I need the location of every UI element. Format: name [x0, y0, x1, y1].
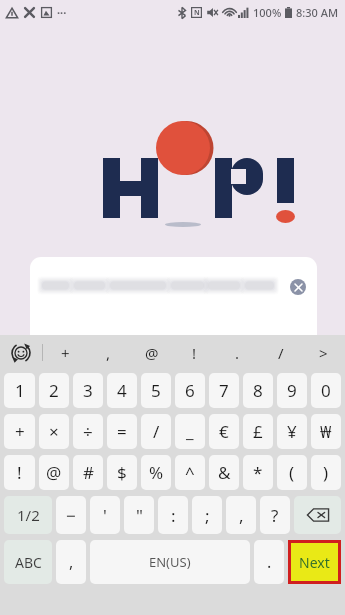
button[interactable]: ,: [56, 540, 86, 584]
button[interactable]: EN(US): [90, 540, 250, 584]
button[interactable]: @: [39, 455, 69, 490]
button[interactable]: _: [175, 414, 205, 449]
staticText: 0: [321, 379, 331, 402]
staticText: 7: [219, 379, 229, 402]
button[interactable]: &: [209, 455, 239, 490]
staticText: &: [218, 461, 231, 484]
button[interactable]: 1/2: [4, 496, 52, 534]
staticText: .: [267, 551, 272, 573]
button[interactable]: 6: [175, 373, 205, 408]
staticText: ÷: [83, 420, 93, 443]
button[interactable]: ÷: [73, 414, 103, 449]
staticText: ): [323, 461, 329, 484]
button[interactable]: #: [73, 455, 103, 490]
staticText: ": [136, 504, 143, 527]
staticText: ,: [69, 551, 74, 573]
button[interactable]: £: [243, 414, 273, 449]
staticText: @: [46, 461, 62, 484]
staticText: 3: [83, 379, 93, 402]
button[interactable]: %: [141, 455, 171, 490]
staticText: EN(US): [149, 553, 191, 571]
button[interactable]: !: [173, 335, 216, 370]
staticText: .: [235, 343, 240, 363]
button[interactable]: 4: [107, 373, 137, 408]
staticText: 100%: [253, 5, 282, 20]
button[interactable]: 1: [4, 373, 35, 408]
button[interactable]: =: [107, 414, 137, 449]
staticText: ;: [205, 504, 210, 527]
staticText: ?: [271, 504, 279, 527]
staticText: ···: [57, 5, 67, 20]
staticText: #: [83, 461, 94, 484]
button[interactable]: .: [254, 540, 284, 584]
button[interactable]: Clear text: [30, 257, 317, 337]
staticText: _: [186, 420, 194, 443]
staticText: $: [117, 461, 127, 484]
button[interactable]: ¥: [277, 414, 307, 449]
button[interactable]: 2: [39, 373, 69, 408]
button[interactable]: ?: [260, 496, 290, 534]
staticText: 4: [117, 379, 127, 402]
staticText: ': [103, 504, 107, 527]
staticText: :: [171, 504, 176, 527]
button[interactable]: 7: [209, 373, 239, 408]
button[interactable]: @: [130, 335, 173, 370]
staticText: −: [66, 504, 76, 527]
button[interactable]: $: [107, 455, 137, 490]
button[interactable]: /: [259, 335, 302, 370]
button[interactable]: ^: [175, 455, 205, 490]
button[interactable]: 5: [141, 373, 171, 408]
button[interactable]: +: [43, 335, 87, 370]
staticText: /: [278, 343, 284, 363]
button[interactable]: ;: [192, 496, 222, 534]
staticText: @: [145, 343, 159, 363]
staticText: 8:30 AM: [296, 5, 339, 20]
staticText: 6: [185, 379, 195, 402]
button[interactable]: :: [158, 496, 188, 534]
staticText: ₩: [320, 420, 332, 443]
staticText: +: [15, 420, 25, 443]
staticText: =: [117, 420, 127, 443]
staticText: €: [219, 420, 229, 443]
button[interactable]: ": [124, 496, 154, 534]
button[interactable]: (: [277, 455, 307, 490]
staticText: ×: [49, 420, 59, 443]
staticText: !: [17, 461, 22, 484]
staticText: /: [153, 420, 160, 443]
staticText: N: [194, 8, 200, 18]
button[interactable]: Next: [291, 543, 338, 581]
button[interactable]: ₩: [311, 414, 341, 449]
button[interactable]: Backspace: [294, 496, 341, 534]
staticText: 5: [151, 379, 161, 402]
button[interactable]: /: [141, 414, 171, 449]
button[interactable]: Emoji: [0, 335, 42, 370]
staticText: £: [253, 420, 263, 443]
button[interactable]: ABC: [4, 540, 52, 584]
staticText: *: [253, 461, 263, 484]
button[interactable]: 9: [277, 373, 307, 408]
button[interactable]: ×: [39, 414, 69, 449]
button[interactable]: 0: [311, 373, 341, 408]
staticText: %: [149, 461, 164, 484]
button[interactable]: ,: [87, 335, 130, 370]
button[interactable]: ): [311, 455, 341, 490]
button[interactable]: ': [90, 496, 120, 534]
button[interactable]: +: [4, 414, 35, 449]
button[interactable]: *: [243, 455, 273, 490]
staticText: +: [61, 343, 70, 363]
button[interactable]: ,: [226, 496, 256, 534]
button[interactable]: >: [302, 335, 345, 370]
button[interactable]: .: [216, 335, 259, 370]
button[interactable]: 3: [73, 373, 103, 408]
staticText: 2: [49, 379, 59, 402]
button[interactable]: −: [56, 496, 86, 534]
staticText: 8: [253, 379, 263, 402]
button[interactable]: !: [4, 455, 35, 490]
staticText: ,: [106, 343, 111, 363]
button[interactable]: Clear text: [290, 279, 306, 295]
staticText: ABC: [15, 553, 42, 572]
button[interactable]: 8: [243, 373, 273, 408]
staticText: (: [289, 461, 295, 484]
button[interactable]: €: [209, 414, 239, 449]
staticText: ¥: [287, 420, 297, 443]
